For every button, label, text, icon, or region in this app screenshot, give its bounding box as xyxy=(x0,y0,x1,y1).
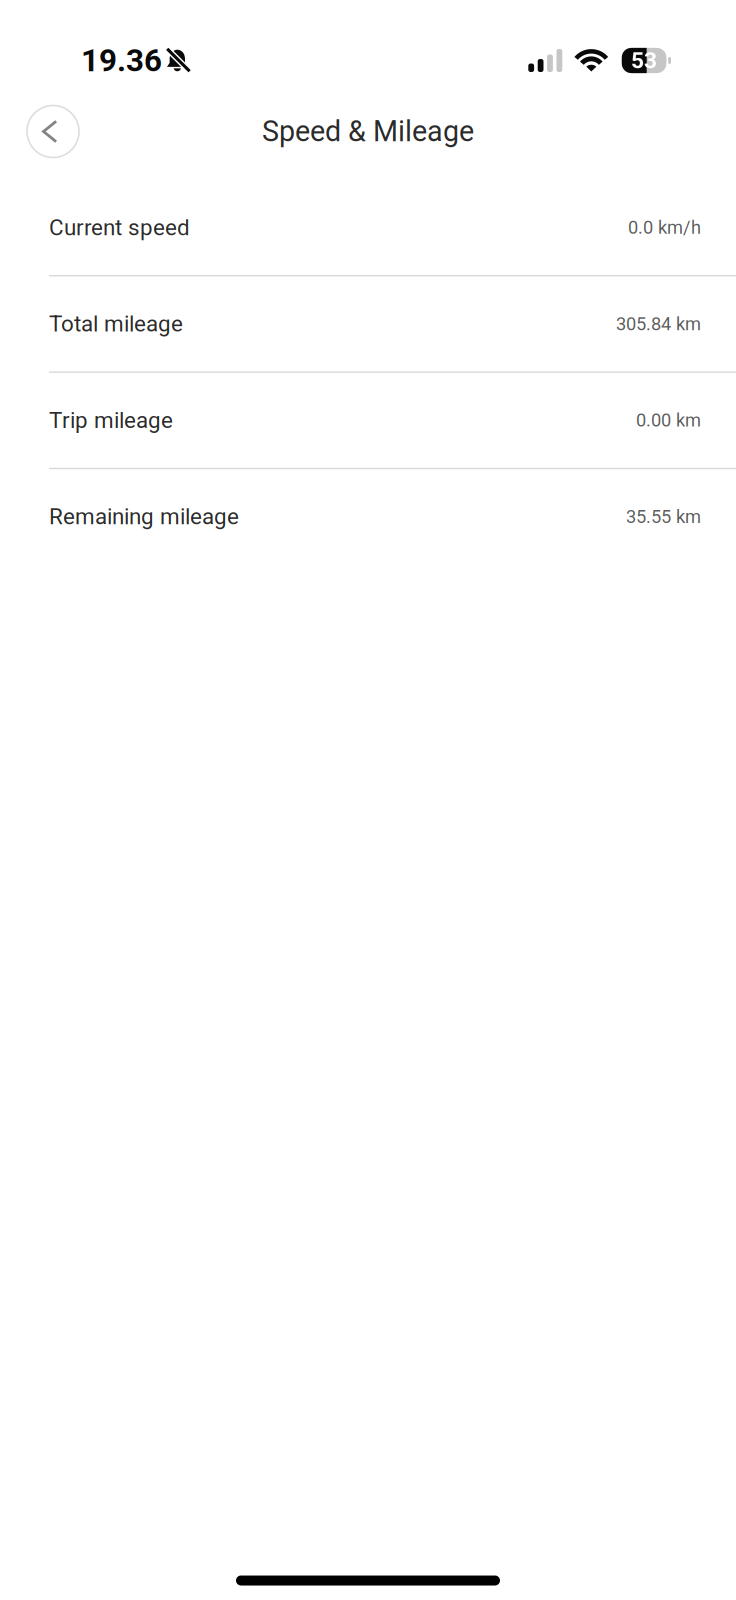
button[interactable]: Back xyxy=(27,105,79,157)
button[interactable]: Current speed xyxy=(0,180,736,275)
staticText: 35.55 km xyxy=(626,506,701,527)
staticText: Remaining mileage xyxy=(49,504,239,530)
staticText: Trip mileage xyxy=(49,407,173,433)
staticText: Total mileage xyxy=(49,311,183,337)
staticText: 19.36 xyxy=(81,42,162,79)
staticText: 53 xyxy=(631,47,657,74)
staticText: 0.0 km/h xyxy=(628,217,701,238)
button[interactable]: Remaining mileage xyxy=(0,469,736,564)
staticText: 305.84 km xyxy=(616,313,701,335)
staticText: 0.00 km xyxy=(636,410,701,431)
button[interactable]: Total mileage xyxy=(0,276,736,371)
button[interactable]: Trip mileage xyxy=(0,373,736,468)
staticText: Current speed xyxy=(49,214,190,241)
staticText: Speed & Mileage xyxy=(262,115,474,148)
